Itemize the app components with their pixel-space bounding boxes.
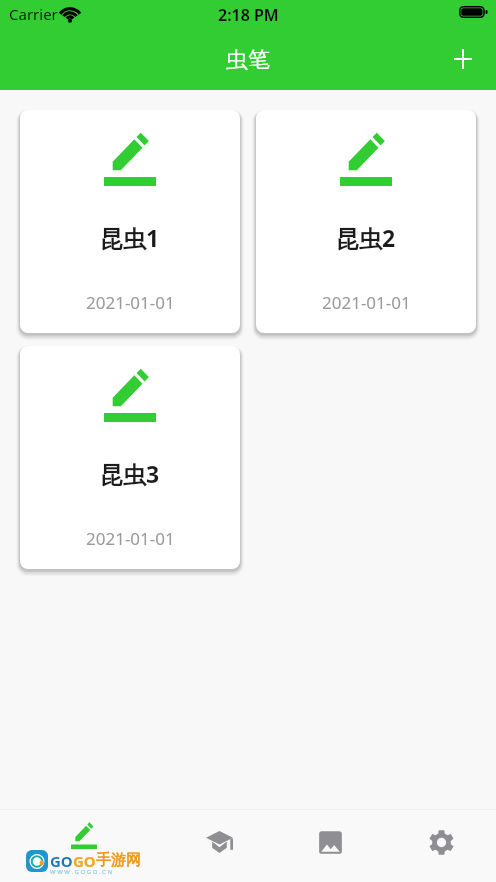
staticText: 2021-01-01 [86, 527, 175, 550]
button[interactable]: Add [437, 34, 489, 83]
staticText: 昆虫1 [100, 222, 160, 253]
button[interactable]: Courses [167, 810, 274, 882]
staticText: 虫笔 [226, 46, 270, 74]
staticText: W W W . G O G O . C N [50, 868, 113, 876]
button[interactable]: 昆虫2 [256, 110, 476, 333]
staticText: 2021-01-01 [86, 291, 175, 314]
button[interactable]: Settings [387, 810, 496, 882]
staticText: 昆虫3 [100, 458, 160, 489]
staticText: 2:18 PM [218, 4, 279, 26]
staticText: Carrier [9, 4, 58, 24]
staticText: 手游网 [96, 851, 141, 870]
button[interactable]: 昆虫3 [20, 346, 240, 569]
button[interactable]: 昆虫1 [20, 110, 240, 333]
button[interactable]: Gallery [274, 810, 387, 882]
staticText: 2021-01-01 [322, 291, 411, 314]
staticText: 昆虫2 [336, 222, 396, 253]
button[interactable]: Notes [0, 810, 167, 882]
staticText: GO [73, 851, 96, 871]
staticText: GO [50, 851, 73, 871]
